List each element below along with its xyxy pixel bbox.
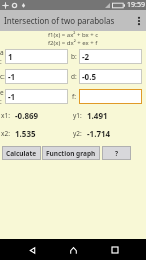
staticText: f1(x) = ax² + bx + c <box>48 31 99 39</box>
staticText: Calculate <box>6 149 37 158</box>
staticText: Function graph <box>46 149 96 158</box>
button[interactable]: Recent apps <box>105 240 125 260</box>
staticText: 19:59 <box>127 0 145 10</box>
staticText: ? <box>115 149 119 158</box>
staticText: f: <box>72 92 76 101</box>
staticText: -1 <box>8 71 16 82</box>
staticText: y1: <box>73 111 87 120</box>
staticText: b: <box>71 52 77 61</box>
staticText: -1 <box>8 91 16 102</box>
staticText: 1.535 <box>15 128 73 139</box>
button[interactable] <box>79 89 142 104</box>
staticText: x1: <box>1 111 15 120</box>
staticText: -0.869 <box>15 110 73 121</box>
button[interactable]: -1 <box>5 69 68 84</box>
staticText: y2: <box>73 129 87 138</box>
button[interactable]: 1 <box>5 49 68 64</box>
staticText: 1.491 <box>87 110 108 121</box>
staticText: x2: <box>1 129 15 138</box>
staticText: -2 <box>82 51 90 62</box>
staticText: -1.714 <box>87 128 111 139</box>
staticText: e: <box>0 88 5 104</box>
button[interactable]: More options <box>132 10 146 31</box>
button[interactable]: -1 <box>5 89 68 104</box>
button[interactable]: Function graph <box>42 146 100 160</box>
button[interactable]: -2 <box>79 49 142 64</box>
staticText: d: <box>71 72 77 81</box>
staticText: 1 <box>8 51 13 62</box>
staticText: c: <box>0 72 5 81</box>
button[interactable]: -0.5 <box>79 69 142 84</box>
button[interactable]: Home <box>63 240 83 260</box>
staticText: a: <box>0 48 5 64</box>
button[interactable]: Calculate <box>2 146 41 160</box>
button[interactable]: ? <box>102 146 131 160</box>
staticText: -0.5 <box>82 71 96 82</box>
staticText: Intersection of two parabolas <box>4 15 115 26</box>
button[interactable]: Back <box>22 240 42 260</box>
staticText: f2(x) = dx² + ex + f <box>48 39 98 47</box>
